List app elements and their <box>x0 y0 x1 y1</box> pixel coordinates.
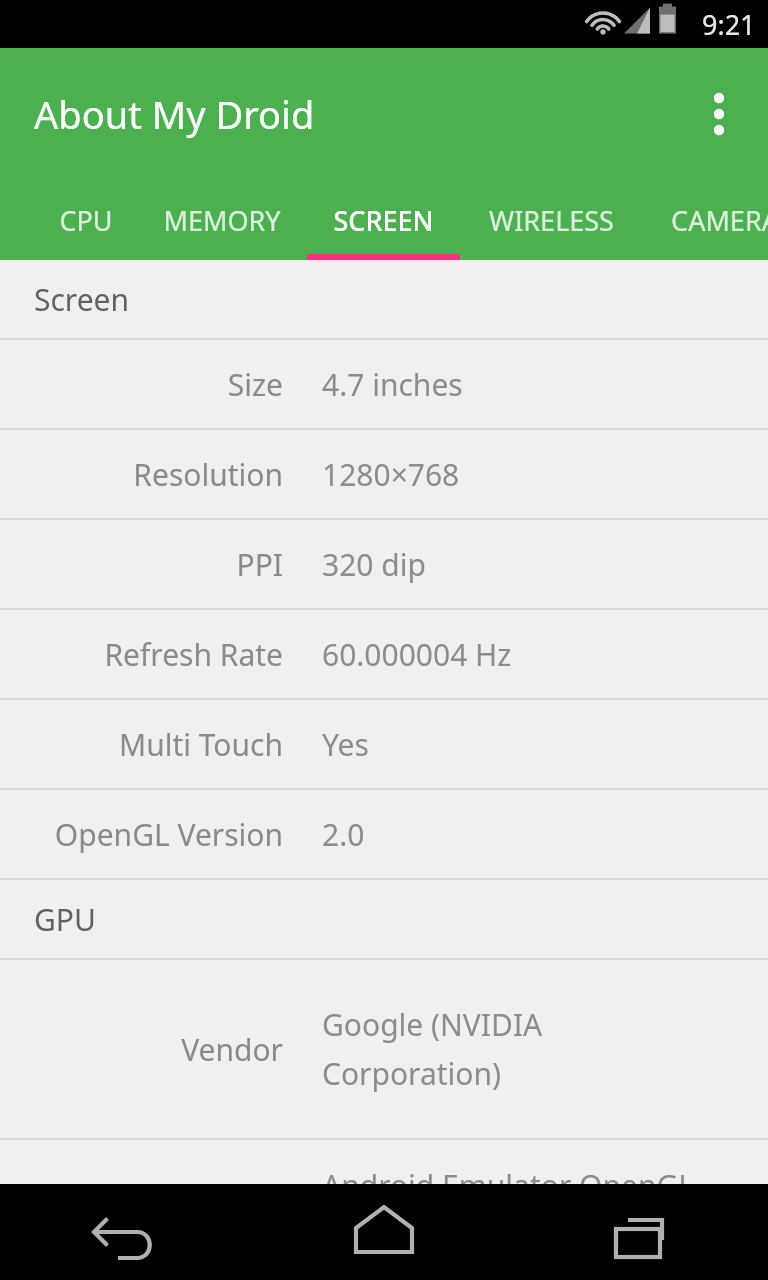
staticText: Google (NVIDIA Corporation) <box>322 1004 543 1094</box>
button[interactable]: Refresh Rate <box>0 610 768 698</box>
staticText: About My Droid <box>34 88 315 140</box>
staticText: 1280×768 <box>322 454 460 495</box>
button[interactable]: WIRELESS <box>466 180 636 260</box>
button[interactable]: Multi Touch <box>0 700 768 788</box>
staticText: 9:21 <box>702 6 756 43</box>
staticText: 4.7 inches <box>322 364 463 405</box>
staticText: CAMERA <box>671 202 768 239</box>
staticText: Multi Touch <box>0 724 283 765</box>
staticText: Refresh Rate <box>0 634 283 675</box>
staticText: Vendor <box>0 1029 283 1070</box>
staticText: CPU <box>59 202 113 239</box>
staticText: Yes <box>322 724 369 765</box>
button[interactable]: MEMORY <box>144 180 300 260</box>
button[interactable]: CAMERA <box>640 180 768 260</box>
staticText: GPU <box>34 899 96 940</box>
button[interactable]: SCREEN <box>307 180 460 260</box>
button[interactable]: Resolution <box>0 430 768 518</box>
button[interactable]: Vendor <box>0 960 768 1138</box>
button[interactable]: OpenGL Version <box>0 790 768 878</box>
staticText: 320 dip <box>322 544 426 585</box>
staticText: PPI <box>0 544 283 585</box>
button[interactable]: PPI <box>0 520 768 608</box>
staticText: Renderer <box>0 1190 283 1231</box>
button[interactable]: More options <box>686 69 752 159</box>
button[interactable]: CPU <box>28 180 144 260</box>
staticText: MEMORY <box>163 202 281 239</box>
staticText: 60.000004 Hz <box>322 634 512 675</box>
staticText: Screen <box>34 279 130 320</box>
staticText: Resolution <box>0 454 283 495</box>
button[interactable]: Size <box>0 340 768 428</box>
staticText: WIRELESS <box>489 202 614 239</box>
staticText: OpenGL Version <box>0 814 283 855</box>
staticText: Android Emulator OpenGL ES Translator (N… <box>322 1165 694 1255</box>
staticText: Size <box>0 364 283 405</box>
button[interactable]: Home <box>256 1184 512 1280</box>
button[interactable]: Back <box>0 1184 256 1280</box>
button[interactable]: Renderer <box>0 1140 768 1280</box>
button[interactable]: Recent apps <box>512 1184 768 1280</box>
staticText: SCREEN <box>333 202 434 239</box>
staticText: 2.0 <box>322 814 365 855</box>
